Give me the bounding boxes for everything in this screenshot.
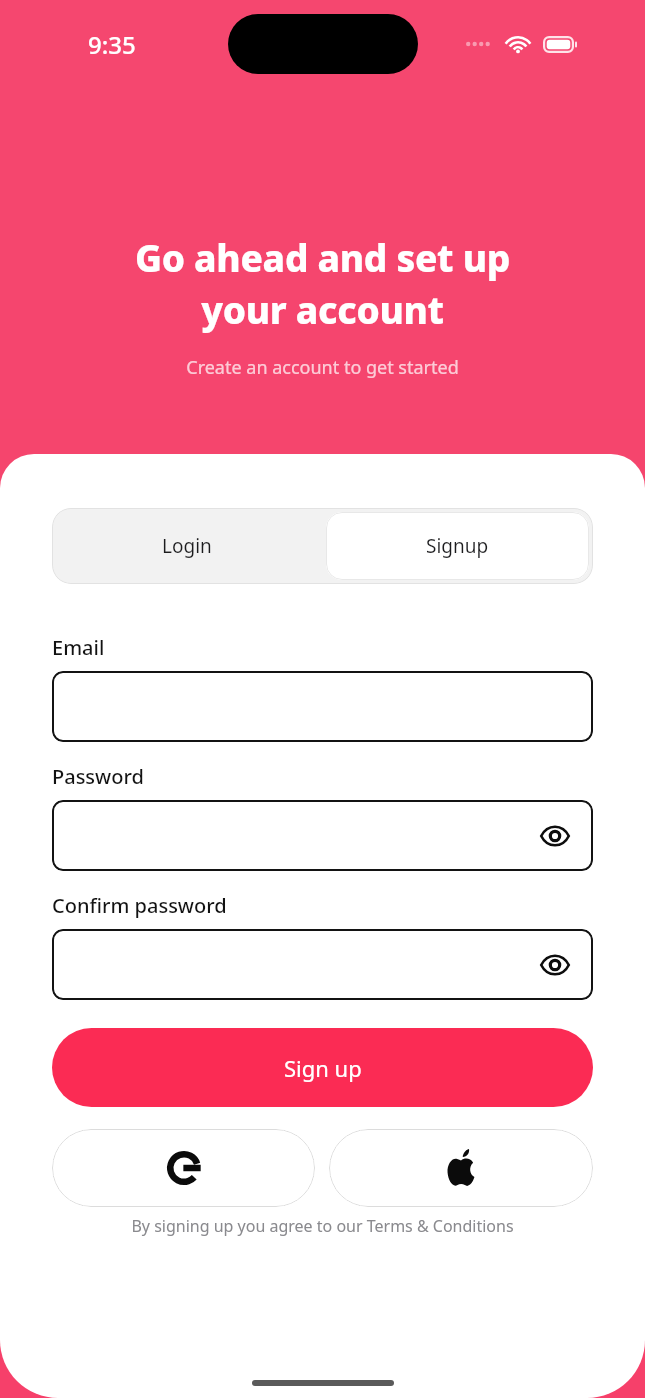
button[interactable]: Sign up with Apple — [329, 1129, 593, 1207]
button[interactable]: Sign up — [52, 1028, 593, 1107]
button[interactable]: Show password — [52, 929, 593, 1000]
staticText: Create an account to get started — [186, 355, 459, 380]
button[interactable]: Sign up with Google — [52, 1129, 315, 1207]
button[interactable]: Show password — [52, 800, 593, 871]
staticText: 9:35 — [88, 28, 136, 61]
staticText: Signup — [426, 533, 489, 559]
staticText: Sign up — [284, 1053, 362, 1083]
staticText: Confirm password — [52, 892, 227, 919]
button[interactable]: Show password — [535, 945, 575, 985]
button[interactable]: Show password — [535, 816, 575, 856]
staticText: Email — [52, 634, 105, 661]
staticText: Login — [162, 533, 212, 559]
staticText: By signing up you agree to our Terms & C… — [0, 1215, 645, 1237]
staticText: Go ahead and set up your account — [135, 232, 510, 335]
button[interactable]: Signup — [326, 512, 589, 580]
button[interactable]: Login — [52, 508, 322, 584]
staticText: Password — [52, 763, 144, 790]
button[interactable] — [52, 671, 593, 742]
